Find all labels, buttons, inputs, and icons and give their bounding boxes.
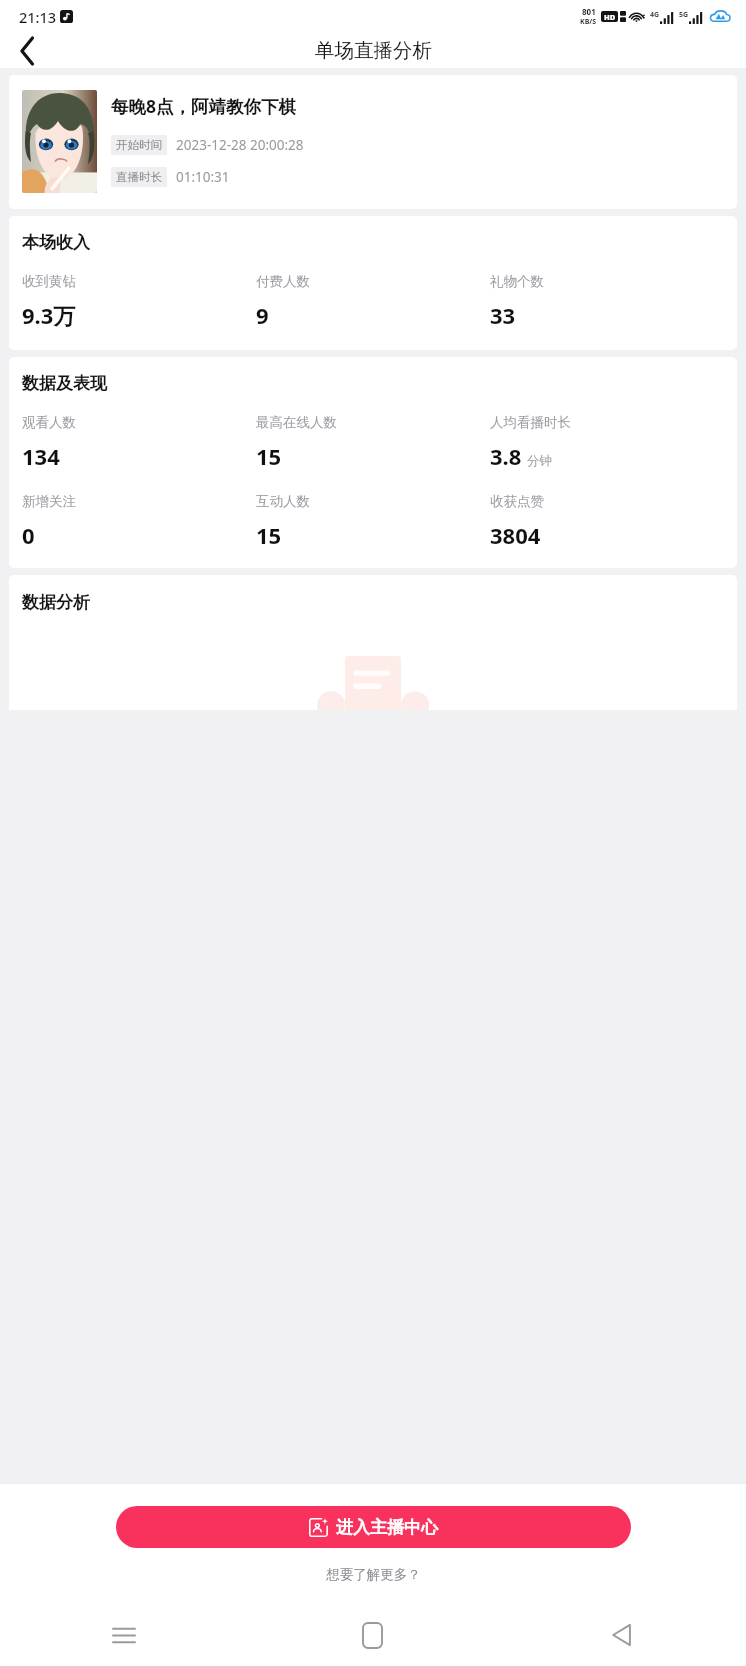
staticText: 直播时长	[116, 170, 162, 184]
staticText: 01:10:31	[176, 168, 230, 186]
staticText: 3.8	[490, 441, 522, 471]
button[interactable]: Home	[248, 1604, 497, 1666]
button[interactable]: Back	[497, 1604, 746, 1666]
staticText: 9	[256, 300, 269, 330]
staticText: 人均看播时长	[490, 414, 571, 431]
staticText: 进入主播中心	[336, 1517, 438, 1538]
staticText: 数据分析	[22, 592, 90, 613]
button[interactable]: Back	[6, 33, 50, 68]
staticText: 收到黄钻	[22, 273, 76, 290]
staticText: HD	[604, 12, 616, 22]
staticText: 3804	[490, 520, 541, 550]
staticText: 数据及表现	[22, 373, 107, 394]
staticText: 0	[22, 520, 35, 550]
staticText: 新增关注	[22, 493, 76, 510]
staticText: 21:13	[19, 7, 57, 27]
button[interactable]: 每晚8点，阿靖教你下棋	[9, 75, 737, 209]
staticText: 15	[256, 520, 282, 550]
staticText: 801	[582, 6, 596, 17]
staticText: 33	[490, 300, 516, 330]
button[interactable]: Recents	[0, 1604, 248, 1666]
staticText: 观看人数	[22, 414, 76, 431]
staticText: 单场直播分析	[315, 38, 432, 63]
staticText: 最高在线人数	[256, 414, 337, 431]
staticText: 每晚8点，阿靖教你下棋	[111, 94, 297, 118]
staticText: 付费人数	[256, 273, 310, 290]
staticText: 9.3万	[22, 300, 76, 330]
staticText: 开始时间	[116, 138, 162, 152]
staticText: 互动人数	[256, 493, 310, 510]
staticText: KB/S	[580, 17, 597, 27]
staticText: 15	[256, 441, 282, 471]
staticText: 2023-12-28 20:00:28	[176, 136, 304, 154]
staticText: 4G	[650, 10, 660, 20]
button[interactable]: 想要了解更多？	[316, 1563, 431, 1586]
staticText: 本场收入	[22, 232, 90, 253]
staticText: 想要了解更多？	[326, 1566, 421, 1583]
staticText: 分钟	[527, 453, 552, 469]
staticText: 5G	[679, 10, 689, 20]
staticText: 收获点赞	[490, 493, 544, 510]
button[interactable]: 进入主播中心	[116, 1506, 631, 1548]
staticText: 礼物个数	[490, 273, 544, 290]
staticText: 134	[22, 441, 60, 471]
